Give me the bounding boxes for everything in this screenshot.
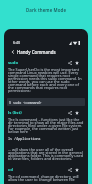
button[interactable]: Favorite	[74, 110, 80, 116]
staticText: ls (list)	[8, 110, 22, 116]
staticText: The ls command – functions just like the…	[8, 117, 84, 135]
button[interactable]: Favorite	[74, 167, 80, 173]
staticText: sudo	[8, 60, 19, 66]
button[interactable]: Share	[67, 167, 73, 173]
staticText: Dark theme Mode	[26, 7, 67, 13]
button[interactable]: Back	[9, 46, 83, 57]
staticText: 6:40	[13, 40, 21, 45]
button[interactable]: Back	[9, 48, 16, 55]
staticText: The SuperUserDo is the most important co…	[8, 67, 84, 94]
staticText: Handy Commands	[17, 49, 56, 55]
button[interactable]: Share	[67, 60, 73, 66]
staticText: … will show the user all of the overall …	[8, 147, 84, 162]
button[interactable]: Share	[67, 110, 73, 116]
staticText: The cd command, change directory, will a…	[8, 174, 84, 183]
button[interactable]: Favorite	[74, 60, 80, 66]
staticText: cd	[8, 167, 13, 173]
staticText: ls /Applications	[8, 136, 41, 141]
staticText: $ sudo <command>	[9, 100, 42, 105]
